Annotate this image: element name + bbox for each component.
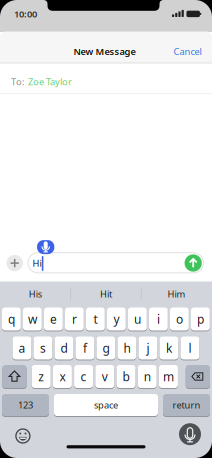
staticText: e bbox=[50, 311, 57, 327]
button[interactable]: Dictation bbox=[37, 240, 54, 254]
button[interactable]: Shift bbox=[2, 365, 27, 388]
staticText: q bbox=[8, 311, 15, 327]
staticText: d bbox=[60, 340, 67, 356]
button[interactable]: return bbox=[163, 394, 210, 416]
staticText: i bbox=[157, 311, 160, 327]
button[interactable]: y bbox=[107, 307, 126, 330]
button[interactable]: t bbox=[86, 307, 105, 330]
button[interactable]: i bbox=[149, 307, 168, 330]
button[interactable]: e bbox=[44, 307, 63, 330]
staticText: New Message bbox=[73, 45, 135, 58]
staticText: h bbox=[123, 340, 130, 356]
button[interactable]: a bbox=[12, 336, 31, 359]
staticText: Him bbox=[168, 288, 186, 300]
staticText: Cancel bbox=[173, 45, 201, 58]
staticText: Zoe Taylor bbox=[28, 75, 72, 88]
staticText: j bbox=[146, 340, 149, 356]
staticText: v bbox=[102, 368, 108, 384]
staticText: Hi bbox=[32, 257, 41, 269]
button[interactable]: s bbox=[33, 336, 52, 359]
staticText: f bbox=[83, 340, 87, 356]
staticText: return bbox=[172, 399, 200, 411]
button[interactable]: g bbox=[96, 336, 115, 359]
staticText: b bbox=[122, 368, 129, 384]
button[interactable]: space bbox=[54, 394, 158, 416]
staticText: l bbox=[188, 340, 191, 356]
button[interactable]: Attach bbox=[6, 255, 23, 271]
button[interactable]: His bbox=[29, 288, 42, 300]
staticText: p bbox=[197, 311, 204, 327]
staticText: Hit bbox=[100, 288, 112, 300]
button[interactable]: Zoe Taylor bbox=[28, 75, 72, 88]
button[interactable]: Hit bbox=[100, 288, 112, 300]
button[interactable]: n bbox=[138, 365, 157, 388]
button[interactable]: m bbox=[159, 365, 178, 388]
button[interactable]: Dictate bbox=[179, 423, 201, 445]
staticText: y bbox=[113, 311, 119, 327]
button[interactable]: 123 bbox=[2, 394, 49, 416]
staticText: a bbox=[18, 340, 25, 356]
button[interactable]: w bbox=[23, 307, 42, 330]
staticText: o bbox=[176, 311, 183, 327]
staticText: n bbox=[144, 368, 151, 384]
button[interactable]: c bbox=[74, 365, 93, 388]
button[interactable]: Delete bbox=[186, 365, 210, 388]
button[interactable]: u bbox=[128, 307, 147, 330]
button[interactable]: p bbox=[191, 307, 210, 330]
button[interactable]: z bbox=[32, 365, 51, 388]
staticText: t bbox=[93, 311, 97, 327]
staticText: To: bbox=[11, 75, 25, 88]
button[interactable]: f bbox=[75, 336, 94, 359]
button[interactable]: b bbox=[116, 365, 135, 388]
button[interactable]: h bbox=[117, 336, 136, 359]
button[interactable]: j bbox=[138, 336, 157, 359]
staticText: u bbox=[134, 311, 141, 327]
button[interactable]: d bbox=[54, 336, 73, 359]
button[interactable]: r bbox=[65, 307, 84, 330]
staticText: s bbox=[40, 340, 46, 356]
staticText: m bbox=[163, 368, 174, 384]
staticText: w bbox=[28, 311, 37, 327]
staticText: space bbox=[94, 399, 118, 411]
staticText: g bbox=[102, 340, 109, 356]
staticText: z bbox=[38, 368, 44, 384]
button[interactable]: Send bbox=[184, 254, 202, 272]
staticText: 10:00 bbox=[14, 8, 37, 20]
staticText: 123 bbox=[18, 399, 33, 411]
button[interactable]: k bbox=[159, 336, 178, 359]
staticText: c bbox=[81, 368, 87, 384]
button[interactable]: o bbox=[170, 307, 189, 330]
button[interactable]: v bbox=[95, 365, 114, 388]
button[interactable]: Cancel bbox=[173, 45, 201, 58]
button[interactable]: Emoji bbox=[16, 429, 30, 443]
staticText: x bbox=[59, 368, 65, 384]
staticText: r bbox=[72, 311, 77, 327]
button[interactable]: l bbox=[180, 336, 199, 359]
staticText: His bbox=[29, 288, 42, 300]
button[interactable]: x bbox=[53, 365, 72, 388]
button[interactable]: Him bbox=[168, 288, 186, 300]
staticText: k bbox=[166, 340, 172, 356]
button[interactable]: q bbox=[2, 307, 21, 330]
